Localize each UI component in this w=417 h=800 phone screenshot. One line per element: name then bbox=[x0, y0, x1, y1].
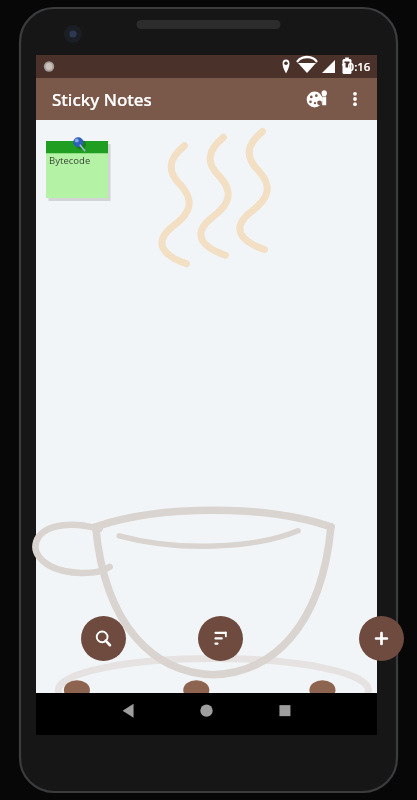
staticText: 10:16 bbox=[341, 59, 371, 75]
button[interactable]: Sort notes bbox=[198, 616, 243, 661]
button[interactable]: Add note bbox=[359, 616, 404, 661]
staticText: Sticky Notes bbox=[52, 88, 152, 111]
button[interactable]: More options bbox=[337, 81, 373, 117]
button[interactable]: Change theme colour bbox=[297, 79, 337, 119]
button[interactable]: Search notes bbox=[81, 616, 126, 661]
button[interactable]: Bytecode bbox=[46, 141, 108, 198]
staticText: Bytecode bbox=[49, 154, 91, 167]
